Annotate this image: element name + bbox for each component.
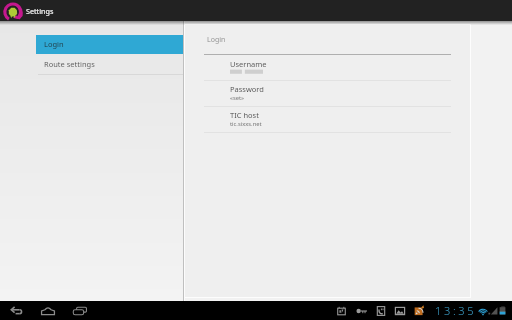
staticText: Login xyxy=(207,35,226,45)
staticText: Username xyxy=(230,59,267,69)
staticText: Password xyxy=(230,84,264,94)
button[interactable]: Login xyxy=(36,35,183,54)
button[interactable]: Back xyxy=(9,303,24,318)
button[interactable]: Route settings xyxy=(36,54,183,74)
button[interactable]: Recent apps xyxy=(72,303,87,318)
staticText: TIC host xyxy=(230,110,259,120)
button[interactable]: Password xyxy=(185,81,512,106)
staticText: 13:35 xyxy=(435,303,477,318)
staticText: tic.sixxs.net xyxy=(230,120,262,128)
button[interactable]: Username xyxy=(185,55,512,80)
button[interactable]: Home xyxy=(40,303,55,318)
button[interactable]: TIC host xyxy=(185,107,512,132)
staticText: Route settings xyxy=(44,59,95,69)
staticText: Login xyxy=(44,39,64,49)
staticText: Settings xyxy=(26,6,54,16)
staticText: «set» xyxy=(230,94,245,102)
